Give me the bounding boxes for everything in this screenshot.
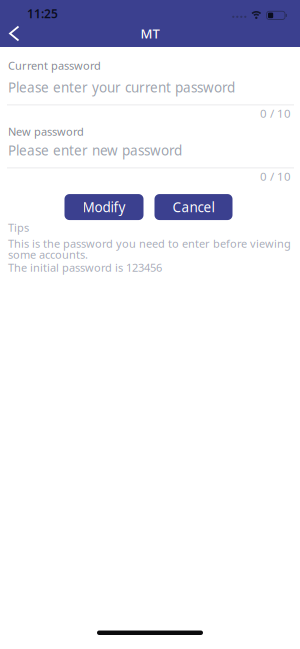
staticText: This is the password you need to enter b… [8, 236, 291, 251]
staticText: 0 / 10 [260, 168, 291, 184]
staticText: 11:25 [27, 5, 58, 22]
staticText: Please enter your current password [8, 78, 235, 96]
staticText: Please enter new password [8, 141, 182, 159]
button[interactable]: Please enter your current password [0, 73, 294, 105]
staticText: Cancel [172, 198, 214, 216]
staticText: Tips [8, 220, 29, 235]
button[interactable]: Back [0, 26, 30, 44]
staticText: New password [8, 124, 84, 139]
staticText: The initial password is 123456 [8, 260, 162, 275]
staticText: some accounts. [8, 247, 88, 262]
button[interactable]: Please enter new password [0, 139, 294, 168]
button[interactable]: Modify [64, 194, 143, 220]
staticText: Current password [8, 58, 101, 73]
staticText: MT [140, 25, 159, 42]
staticText: 0 / 10 [260, 105, 291, 121]
staticText: Modify [82, 198, 125, 216]
button[interactable]: Cancel [154, 194, 232, 220]
